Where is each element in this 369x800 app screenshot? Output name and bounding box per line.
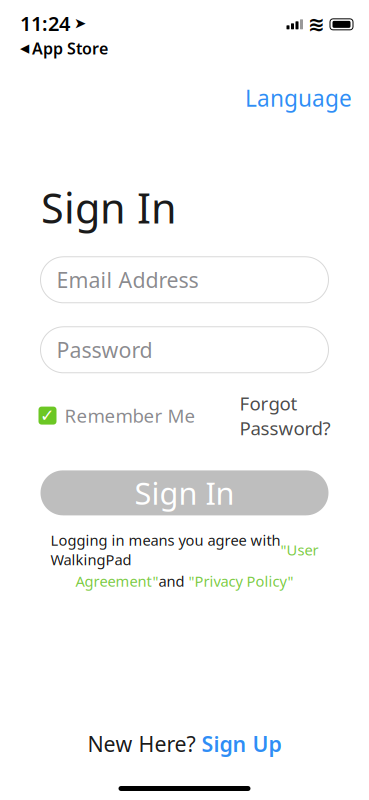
staticText: Email Address	[56, 266, 198, 294]
staticText: "Privacy Policy"	[188, 571, 293, 591]
staticText: and	[158, 571, 188, 591]
staticText: Sign In	[41, 180, 177, 235]
staticText: ◀	[20, 41, 29, 55]
staticText: Language	[245, 83, 352, 113]
staticText: Sign In	[134, 472, 234, 513]
staticText: App Store	[32, 38, 108, 59]
staticText: ✓	[40, 406, 55, 425]
staticText: Logging in means you agree with WalkingP…	[50, 530, 280, 569]
staticText: Remember Me	[64, 403, 195, 428]
staticText: ≋	[308, 13, 325, 36]
button[interactable]: Sign Up	[201, 730, 281, 758]
button[interactable]: Sign In	[40, 470, 328, 515]
button[interactable]: ✓	[38, 403, 195, 428]
staticText: Password	[56, 336, 152, 364]
staticText: Sign Up	[201, 730, 281, 758]
button[interactable]: Language	[239, 79, 358, 117]
staticText: Forgot Password?	[239, 391, 330, 440]
staticText: "User	[280, 540, 318, 560]
button[interactable]: Forgot Password?	[239, 391, 330, 440]
staticText: 11:24	[20, 10, 70, 37]
staticText: New Here?	[87, 730, 195, 758]
staticText: Agreement"	[75, 571, 158, 591]
staticText: ➤	[74, 15, 86, 32]
